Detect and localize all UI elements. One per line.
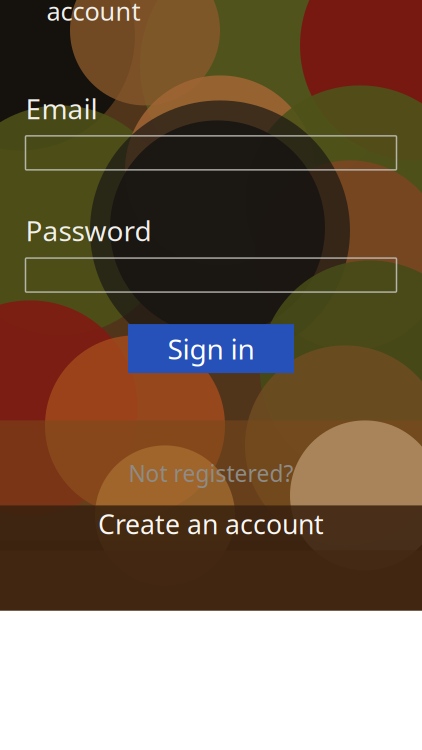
staticText: Email — [25, 90, 97, 127]
staticText: Sign in — [167, 330, 254, 367]
button[interactable]: Sign in — [128, 324, 294, 373]
button[interactable]: Create an account — [82, 502, 340, 546]
staticText: Password — [25, 212, 151, 249]
staticText: Not registered? — [128, 458, 293, 488]
staticText: Login to your myHungryPal account — [46, 0, 375, 28]
staticText: Create an account — [98, 506, 324, 542]
